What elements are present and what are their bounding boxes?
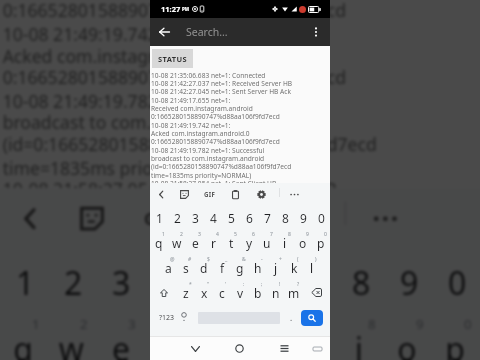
button[interactable]: 8	[336, 247, 384, 313]
button[interactable]: More	[365, 188, 403, 247]
button[interactable]: Switch keyboard	[308, 337, 326, 360]
button[interactable]: #	[177, 255, 195, 280]
button[interactable]: 1	[0, 247, 48, 313]
button[interactable]: 3	[186, 230, 204, 255]
button[interactable]: -	[249, 255, 267, 280]
button[interactable]: Backspace	[303, 280, 330, 305]
button[interactable]: GIF	[139, 188, 181, 247]
button[interactable]: 5	[192, 313, 240, 360]
button[interactable]: *	[177, 280, 195, 305]
button[interactable]: 3	[96, 247, 144, 313]
button[interactable]: 6	[240, 247, 288, 313]
button[interactable]: 4	[144, 247, 192, 313]
button[interactable]: 8	[336, 313, 384, 360]
button[interactable]: 5	[222, 205, 240, 230]
button[interactable]: 9	[294, 230, 312, 255]
button[interactable]: 3	[96, 313, 144, 360]
button[interactable]: Clipboard	[228, 183, 242, 205]
button[interactable]: 9	[294, 205, 312, 230]
staticText: 1	[162, 231, 165, 238]
button[interactable]: Clipboard	[208, 188, 245, 247]
button[interactable]: Stickers	[177, 183, 191, 205]
staticText: )	[315, 256, 317, 263]
button[interactable]: Back	[150, 18, 179, 46]
button[interactable]: 8	[276, 205, 294, 230]
button[interactable]: STATUS	[152, 49, 193, 68]
staticText: Acked com.instagram.android.0	[151, 129, 250, 138]
button[interactable]: :	[231, 280, 249, 305]
button[interactable]: Back	[11, 188, 48, 247]
button[interactable]: &	[231, 255, 249, 280]
button[interactable]: '	[213, 280, 231, 305]
button[interactable]: 7	[258, 205, 276, 230]
button[interactable]: (	[285, 255, 303, 280]
staticText: :	[243, 281, 245, 288]
button[interactable]: 1	[150, 205, 168, 230]
button[interactable]: 3	[186, 205, 204, 230]
button[interactable]: 2	[168, 230, 186, 255]
staticText: 0:1665280158890747%d88aa106f9fd7ecd	[151, 112, 280, 121]
button[interactable]: 7	[288, 247, 336, 313]
staticText: *	[189, 281, 192, 288]
button[interactable]: ?	[285, 280, 303, 305]
button[interactable]: 6	[240, 230, 258, 255]
button[interactable]: More	[287, 183, 301, 205]
button[interactable]: Settings	[277, 188, 315, 247]
button[interactable]: 0	[432, 313, 480, 360]
button[interactable]: ;	[249, 280, 267, 305]
button[interactable]: 9	[384, 313, 432, 360]
button[interactable]: @	[159, 255, 177, 280]
button[interactable]: 5	[222, 230, 240, 255]
button[interactable]: 4	[144, 313, 192, 360]
button[interactable]: 4	[204, 230, 222, 255]
button[interactable]: Stickers	[72, 188, 109, 247]
staticText: c	[219, 285, 225, 301]
button[interactable]: 4	[204, 205, 222, 230]
button[interactable]: 2	[48, 247, 96, 313]
button[interactable]: Home	[230, 337, 248, 360]
staticText: 9	[400, 260, 419, 303]
button[interactable]: Shift	[150, 280, 177, 305]
button[interactable]: ?123	[154, 305, 180, 330]
button[interactable]: 8	[276, 230, 294, 255]
staticText: 8	[352, 260, 371, 303]
button[interactable]: +	[267, 255, 285, 280]
button[interactable]: 2	[168, 205, 186, 230]
button[interactable]: 1	[0, 313, 48, 360]
button[interactable]: 7	[258, 230, 276, 255]
button[interactable]: 2	[48, 313, 96, 360]
button[interactable]: $	[195, 255, 213, 280]
button[interactable]: .	[285, 305, 297, 330]
button[interactable]: 5	[192, 247, 240, 313]
button[interactable]: Back	[186, 337, 204, 360]
button[interactable]: Recent apps	[275, 337, 293, 360]
button[interactable]: 6	[240, 205, 258, 230]
button[interactable]: 9	[384, 247, 432, 313]
staticText: u	[301, 327, 323, 360]
button[interactable]: 7	[288, 313, 336, 360]
staticText: _	[225, 256, 228, 263]
staticText: q	[13, 327, 35, 360]
button[interactable]: 0	[312, 230, 330, 255]
button[interactable]: More options	[302, 18, 330, 46]
staticText: z	[183, 285, 189, 301]
button[interactable]: GIF	[202, 183, 218, 205]
staticText: GIF	[144, 207, 176, 228]
button[interactable]: Back	[154, 183, 168, 205]
button[interactable]: 0	[312, 205, 330, 230]
staticText: ?123	[159, 313, 175, 323]
button[interactable]: Settings	[254, 183, 268, 205]
button[interactable]: 1	[150, 230, 168, 255]
button[interactable]: "	[195, 280, 213, 305]
staticText: x	[201, 285, 208, 301]
button[interactable]: _	[213, 255, 231, 280]
button[interactable]: Emoji	[177, 305, 191, 330]
button[interactable]: 0	[432, 247, 480, 313]
button[interactable]: 6	[240, 313, 288, 360]
button[interactable]: )	[303, 255, 321, 280]
button[interactable]: Search	[301, 310, 323, 326]
staticText: p	[445, 327, 467, 360]
button[interactable]: !	[267, 280, 285, 305]
staticText: #	[188, 256, 192, 263]
